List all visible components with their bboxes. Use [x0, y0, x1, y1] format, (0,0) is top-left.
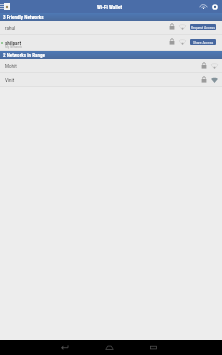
- staticText: Wi-Fi Wallet: [97, 4, 122, 10]
- button[interactable]: Recent apps: [131, 340, 175, 355]
- staticText: shilpart: [5, 40, 21, 46]
- staticText: Share Access: [193, 40, 214, 44]
- button[interactable]: Vinit: [0, 73, 222, 86]
- button[interactable]: rahul: [0, 21, 222, 34]
- button[interactable]: Mohit: [0, 59, 222, 72]
- button[interactable]: Menu: [0, 0, 5, 13]
- staticText: 2 Networks in Range: [3, 52, 45, 58]
- button[interactable]: Share Access: [190, 39, 216, 45]
- button[interactable]: Home: [87, 340, 131, 355]
- button[interactable]: Request Access: [190, 24, 216, 30]
- staticText: My Network: [5, 45, 22, 49]
- button[interactable]: App icon: [4, 3, 10, 10]
- button[interactable]: shilpart: [0, 35, 222, 50]
- staticText: rahul: [5, 25, 16, 31]
- button[interactable]: Back: [43, 340, 87, 355]
- staticText: Mohit: [5, 63, 17, 69]
- staticText: Request Access: [191, 25, 215, 29]
- button[interactable]: Wi-Fi status: [198, 0, 209, 13]
- staticText: 3 Friendly Networks: [3, 14, 44, 20]
- button[interactable]: Settings: [209, 0, 220, 13]
- staticText: Vinit: [5, 77, 15, 83]
